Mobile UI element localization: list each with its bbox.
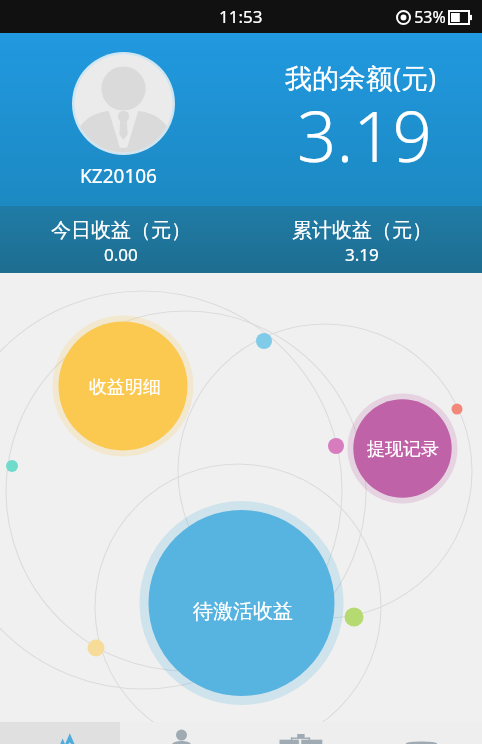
staticText: 0.00 xyxy=(104,243,138,266)
staticText: 3.19 xyxy=(345,243,379,266)
staticText: 提现记录 xyxy=(367,438,439,461)
button[interactable]: Home xyxy=(0,722,120,744)
button[interactable]: 收益明细 xyxy=(5,367,245,407)
staticText: 累计收益（元） xyxy=(292,218,432,243)
button[interactable]: 提现记录 xyxy=(283,429,482,469)
staticText: 11:53 xyxy=(219,5,263,28)
button[interactable]: Wallet xyxy=(361,722,482,744)
staticText: 3.19 xyxy=(244,88,482,182)
button[interactable]: Profile xyxy=(120,722,240,744)
staticText: 今日收益（元） xyxy=(51,218,191,243)
staticText: 待激活收益 xyxy=(193,599,293,624)
button[interactable]: 今日收益（元） xyxy=(0,206,241,266)
button[interactable]: Team xyxy=(240,722,361,744)
staticText: 53% xyxy=(410,6,446,28)
staticText: KZ20106 xyxy=(0,163,240,189)
staticText: 收益明细 xyxy=(89,376,161,399)
button[interactable]: 待激活收益 xyxy=(123,591,363,631)
button[interactable]: 累计收益（元） xyxy=(241,206,482,266)
staticText: 我的余额(元) xyxy=(240,59,481,96)
